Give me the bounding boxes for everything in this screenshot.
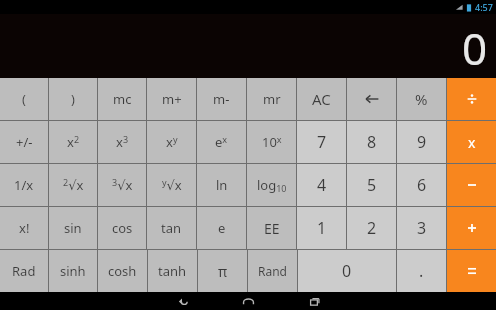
staticText: x <box>468 133 476 152</box>
button[interactable]: 0 <box>298 250 396 292</box>
button[interactable]: x3 <box>98 121 146 163</box>
staticText: xy <box>166 133 178 151</box>
staticText: 9 <box>417 131 427 153</box>
staticText: ex <box>215 133 228 151</box>
staticText: AC <box>312 89 331 109</box>
button[interactable]: π <box>198 250 247 292</box>
button[interactable]: Minus <box>447 164 496 206</box>
button[interactable]: sin <box>49 207 97 249</box>
button[interactable]: 2√x <box>49 164 97 206</box>
button[interactable]: ( <box>0 78 48 120</box>
button[interactable]: 6 <box>397 164 446 206</box>
staticText: sinh <box>60 262 86 280</box>
staticText: x2 <box>67 133 80 151</box>
staticText: m- <box>213 90 230 108</box>
staticText: +/- <box>16 133 33 151</box>
staticText: m+ <box>162 90 182 108</box>
button[interactable]: . <box>397 250 446 292</box>
button[interactable]: Divide <box>447 78 496 120</box>
staticText: 2√x <box>63 176 84 194</box>
staticText: 5 <box>367 174 377 196</box>
button[interactable]: 1 <box>297 207 346 249</box>
button[interactable]: 3√x <box>98 164 146 206</box>
button[interactable]: x <box>447 121 496 163</box>
staticText: mc <box>113 90 132 108</box>
button[interactable]: ln <box>197 164 246 206</box>
button[interactable]: tanh <box>148 250 197 292</box>
staticText: x! <box>19 219 30 237</box>
button[interactable]: 1/x <box>0 164 48 206</box>
button[interactable]: Home <box>237 292 259 310</box>
button[interactable]: x! <box>0 207 48 249</box>
button[interactable]: Backspace <box>347 78 396 120</box>
button[interactable]: Equals <box>447 250 496 292</box>
staticText: 0 <box>462 18 488 78</box>
button[interactable]: 3 <box>397 207 446 249</box>
staticText: 6 <box>417 174 427 196</box>
staticText: tan <box>161 219 182 237</box>
button[interactable]: cosh <box>98 250 147 292</box>
button[interactable]: +/- <box>0 121 48 163</box>
staticText: y√x <box>162 176 182 194</box>
button[interactable]: Plus <box>447 207 496 249</box>
staticText: 8 <box>367 131 377 153</box>
staticText: EE <box>264 219 280 238</box>
staticText: sin <box>64 219 82 237</box>
staticText: log10 <box>257 176 287 195</box>
staticText: cosh <box>108 262 137 280</box>
button[interactable]: mr <box>247 78 296 120</box>
staticText: 1/x <box>14 176 34 194</box>
button[interactable]: ) <box>49 78 97 120</box>
staticText: Rand <box>258 263 287 279</box>
button[interactable]: 4 <box>297 164 346 206</box>
staticText: 3 <box>417 217 427 239</box>
button[interactable]: x2 <box>49 121 97 163</box>
button[interactable]: 2 <box>347 207 396 249</box>
button[interactable]: % <box>397 78 446 120</box>
button[interactable]: y√x <box>147 164 196 206</box>
button[interactable]: 7 <box>297 121 346 163</box>
staticText: π <box>218 262 228 281</box>
staticText: tanh <box>158 262 187 280</box>
staticText: Rad <box>12 262 36 280</box>
button[interactable]: tan <box>147 207 196 249</box>
staticText: % <box>415 89 428 109</box>
staticText: e <box>218 219 226 237</box>
staticText: 2 <box>367 217 377 239</box>
button[interactable]: Rand <box>248 250 297 292</box>
staticText: 1 <box>317 217 327 239</box>
button[interactable]: m+ <box>147 78 196 120</box>
staticText: . <box>419 260 424 282</box>
staticText: ln <box>216 176 228 194</box>
button[interactable]: sinh <box>49 250 97 292</box>
button[interactable]: Recents <box>303 292 325 310</box>
staticText: cos <box>112 219 133 237</box>
staticText: 7 <box>317 131 327 153</box>
staticText: 0 <box>342 260 352 282</box>
staticText: x3 <box>116 133 129 151</box>
button[interactable]: xy <box>147 121 196 163</box>
staticText: 4:57 <box>475 1 493 13</box>
button[interactable]: 8 <box>347 121 396 163</box>
staticText: 10x <box>262 133 282 151</box>
button[interactable]: EE <box>247 207 296 249</box>
button[interactable]: ex <box>197 121 246 163</box>
button[interactable]: 10x <box>247 121 296 163</box>
staticText: mr <box>263 90 281 108</box>
button[interactable]: 5 <box>347 164 396 206</box>
staticText: ( <box>22 90 26 108</box>
staticText: 4 <box>317 174 327 196</box>
button[interactable]: AC <box>297 78 346 120</box>
staticText: 3√x <box>112 176 133 194</box>
button[interactable]: 9 <box>397 121 446 163</box>
button[interactable]: m- <box>197 78 246 120</box>
button[interactable]: cos <box>98 207 146 249</box>
button[interactable]: Back <box>171 292 193 310</box>
staticText: ) <box>71 90 75 108</box>
button[interactable]: mc <box>98 78 146 120</box>
button[interactable]: log10 <box>247 164 296 206</box>
button[interactable]: e <box>197 207 246 249</box>
button[interactable]: Rad <box>0 250 48 292</box>
